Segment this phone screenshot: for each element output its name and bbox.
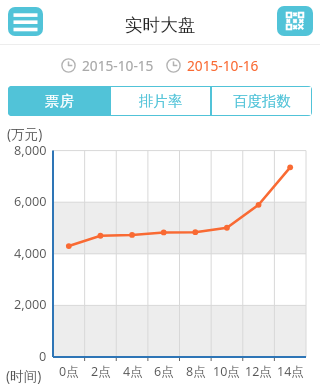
staticText: 12点	[245, 363, 272, 380]
staticText: 2015-10-16	[187, 56, 259, 75]
staticText: 票房	[45, 92, 74, 110]
button[interactable]: Scan QR code	[277, 6, 313, 36]
staticText: 6,000	[14, 192, 47, 209]
button[interactable]: 2015-10-16	[166, 56, 259, 75]
staticText: (时间)	[6, 366, 42, 385]
staticText: 0	[39, 347, 47, 364]
staticText: 实时大盘	[125, 14, 196, 36]
staticText: 8点	[186, 363, 206, 380]
staticText: 6点	[154, 363, 174, 380]
button[interactable]: 2015-10-15	[61, 56, 154, 75]
staticText: 14点	[277, 363, 304, 380]
staticText: 4,000	[14, 244, 47, 261]
staticText: 10点	[213, 363, 240, 380]
staticText: 4点	[123, 363, 143, 380]
staticText: 2,000	[14, 295, 47, 312]
button[interactable]: 票房	[8, 86, 110, 116]
button[interactable]: 百度指数	[212, 87, 311, 115]
staticText: 8,000	[14, 141, 47, 158]
staticText: 0点	[59, 363, 79, 380]
staticText: 2点	[91, 363, 111, 380]
button[interactable]: 排片率	[111, 87, 210, 115]
staticText: 百度指数	[233, 92, 291, 110]
staticText: 排片率	[139, 92, 183, 110]
staticText: 2015-10-15	[82, 56, 154, 75]
button[interactable]: Menu	[8, 7, 43, 36]
staticText: (万元)	[7, 124, 43, 143]
